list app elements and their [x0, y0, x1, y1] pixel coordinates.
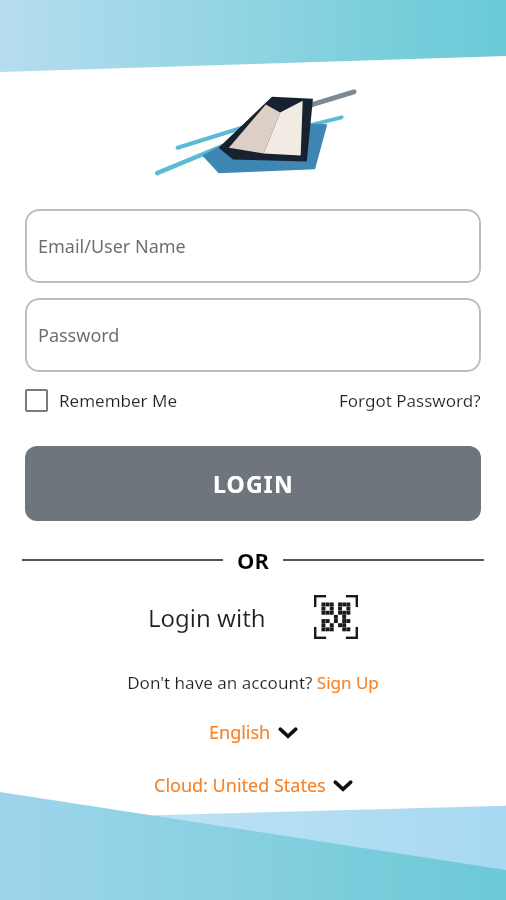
staticText: OR [237, 545, 269, 575]
staticText: English [209, 720, 271, 745]
button[interactable]: Cloud: United States [150, 769, 356, 802]
staticText: Password [38, 323, 120, 348]
staticText: LOGIN [213, 468, 294, 499]
button[interactable]: Password [25, 298, 481, 372]
staticText: Remember Me [59, 389, 178, 412]
button[interactable]: Remember Me [25, 385, 184, 416]
button[interactable]: Don't have an account? Sign Up [123, 667, 383, 698]
staticText: Email/User Name [38, 234, 186, 259]
button[interactable]: English [205, 716, 301, 749]
button[interactable]: Login with QR code [314, 595, 358, 639]
staticText: Forgot Password? [339, 389, 481, 412]
staticText: Cloud: United States [154, 773, 326, 798]
button[interactable]: Forgot Password? [339, 385, 481, 416]
staticText: Login with [148, 601, 266, 634]
staticText: Don't have an account? Sign Up [127, 671, 379, 694]
button[interactable]: LOGIN [25, 446, 481, 521]
button[interactable]: Email/User Name [25, 209, 481, 283]
